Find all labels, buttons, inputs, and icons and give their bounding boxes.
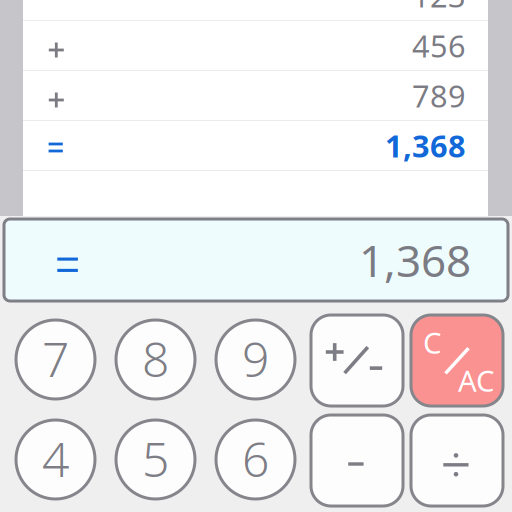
staticText: 456	[412, 25, 466, 66]
button[interactable]: 9	[216, 320, 295, 399]
button[interactable]: 5	[116, 420, 195, 499]
button[interactable]: Minus	[311, 415, 403, 506]
button[interactable]: 1,368	[23, 121, 488, 170]
staticText: 4	[42, 427, 69, 490]
staticText: 789	[412, 75, 466, 116]
button[interactable]: Divide	[411, 415, 503, 506]
button[interactable]: Clear	[411, 315, 503, 406]
button[interactable]: 6	[216, 420, 295, 499]
staticText: 1,368	[359, 231, 471, 289]
staticText: AC	[458, 361, 495, 400]
button[interactable]: 7	[16, 320, 95, 399]
button[interactable]: Plus or minus	[311, 315, 403, 406]
staticText: 7	[42, 327, 69, 390]
staticText: C	[423, 323, 442, 362]
staticText: 1,368	[385, 125, 466, 166]
button[interactable]: 456	[23, 21, 488, 70]
staticText: 6	[242, 427, 269, 490]
button[interactable]: 123	[23, 0, 488, 20]
staticText: 123	[412, 0, 466, 16]
staticText: 5	[142, 427, 169, 490]
button[interactable]: 8	[116, 320, 195, 399]
staticText: 9	[242, 327, 269, 390]
staticText: 8	[142, 327, 169, 390]
button[interactable]: 1,368	[4, 219, 508, 301]
button[interactable]: 789	[23, 71, 488, 120]
button[interactable]: 4	[16, 420, 95, 499]
